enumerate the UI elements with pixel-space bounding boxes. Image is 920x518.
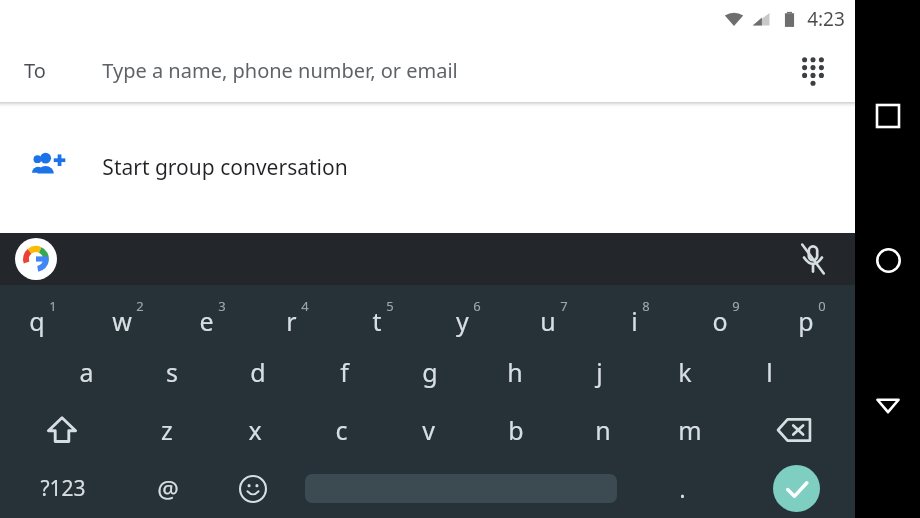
button[interactable]: x <box>211 401 298 459</box>
staticText: v <box>422 413 435 447</box>
staticText: b <box>508 413 524 447</box>
staticText: c <box>335 413 348 447</box>
button[interactable]: . <box>627 459 737 518</box>
button[interactable]: Shift <box>0 401 123 459</box>
button[interactable]: q <box>0 285 85 343</box>
staticText: 6 <box>473 297 481 315</box>
staticText: n <box>595 413 611 447</box>
button[interactable]: w <box>85 285 170 343</box>
button[interactable]: t <box>340 285 425 343</box>
button[interactable]: e <box>170 285 255 343</box>
button[interactable]: b <box>472 401 559 459</box>
staticText: y <box>456 304 469 338</box>
staticText: z <box>161 413 173 447</box>
staticText: 8 <box>642 297 650 315</box>
staticText: To <box>24 57 46 84</box>
staticText: h <box>507 355 523 389</box>
button[interactable]: @ <box>125 459 210 518</box>
button[interactable]: v <box>385 401 472 459</box>
staticText: 7 <box>560 297 568 315</box>
button[interactable]: k <box>642 343 727 401</box>
staticText: a <box>79 355 94 389</box>
button[interactable]: ?123 <box>0 459 125 518</box>
staticText: w <box>112 304 132 338</box>
staticText: k <box>678 355 692 389</box>
button[interactable]: Recents <box>864 92 912 140</box>
staticText: 0 <box>818 297 826 315</box>
button[interactable]: n <box>559 401 646 459</box>
button[interactable]: r <box>255 285 340 343</box>
button[interactable]: j <box>557 343 642 401</box>
staticText: u <box>540 304 556 338</box>
button[interactable]: p <box>769 285 855 343</box>
staticText: q <box>29 304 45 338</box>
button[interactable]: d <box>215 343 301 401</box>
staticText: s <box>166 355 178 389</box>
button[interactable]: Back <box>864 381 912 429</box>
staticText: g <box>422 355 438 389</box>
button[interactable]: g <box>387 343 472 401</box>
button[interactable]: Home <box>864 236 912 284</box>
button[interactable]: o <box>683 285 769 343</box>
button[interactable]: Voice input muted <box>791 237 835 281</box>
staticText: i <box>631 304 638 338</box>
button[interactable]: a <box>43 343 129 401</box>
staticText: r <box>286 304 297 338</box>
staticText: l <box>766 355 773 389</box>
staticText: 1 <box>49 297 57 315</box>
staticText: 4:23 <box>807 6 845 32</box>
button[interactable]: i <box>597 285 683 343</box>
staticText: @ <box>157 472 179 505</box>
staticText: m <box>678 413 702 447</box>
staticText: d <box>250 355 266 389</box>
button[interactable]: Google search <box>14 237 58 281</box>
button[interactable]: Start group conversation <box>0 107 855 219</box>
button[interactable]: c <box>298 401 385 459</box>
staticText: t <box>372 304 382 338</box>
staticText: 2 <box>136 297 144 315</box>
staticText: 3 <box>218 297 226 315</box>
button[interactable]: Emoji <box>210 459 295 518</box>
staticText: e <box>199 304 214 338</box>
button[interactable]: l <box>727 343 812 401</box>
button[interactable]: f <box>301 343 387 401</box>
staticText: o <box>712 304 728 338</box>
staticText: f <box>340 355 349 389</box>
button[interactable]: s <box>129 343 215 401</box>
staticText: 9 <box>732 297 740 315</box>
staticText: 4 <box>301 297 309 315</box>
button[interactable]: z <box>123 401 211 459</box>
staticText: ?123 <box>40 474 86 503</box>
staticText: p <box>798 304 814 338</box>
button[interactable]: h <box>472 343 557 401</box>
button[interactable]: m <box>646 401 733 459</box>
button[interactable]: Dial pad <box>789 46 837 94</box>
staticText: . <box>679 472 686 505</box>
button[interactable]: Backspace <box>733 401 855 459</box>
staticText: x <box>248 413 262 447</box>
button[interactable]: u <box>511 285 597 343</box>
staticText: j <box>596 355 603 389</box>
button[interactable]: Send <box>737 459 855 518</box>
staticText: Start group conversation <box>102 153 348 182</box>
button[interactable]: y <box>425 285 511 343</box>
staticText: 5 <box>386 297 394 315</box>
staticText: Type a name, phone number, or email <box>102 57 458 84</box>
